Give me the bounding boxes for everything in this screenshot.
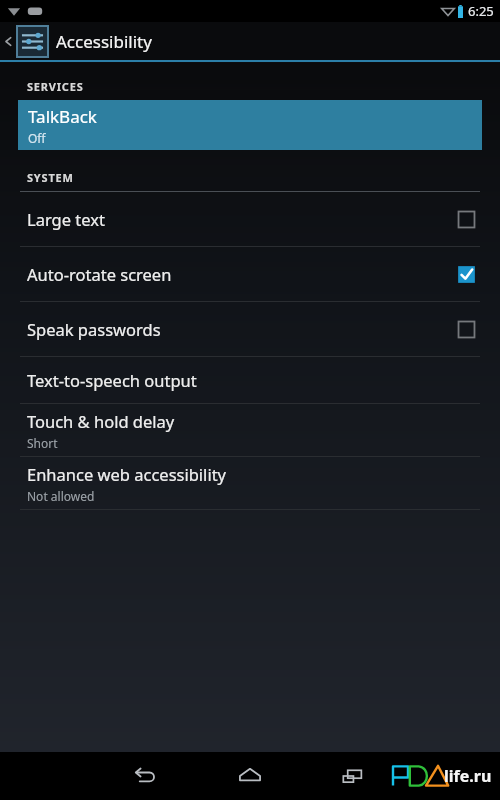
button[interactable]: Up, Accessibility [0, 22, 52, 60]
staticText: Touch & hold delay [27, 410, 175, 432]
button[interactable]: Recent apps [328, 752, 378, 800]
staticText: 6:25 [468, 2, 494, 20]
staticText: Text-to-speech output [27, 369, 197, 391]
button[interactable]: Back [120, 752, 170, 800]
staticText: Short [27, 435, 58, 451]
staticText: Accessibility [56, 30, 152, 53]
button[interactable]: Auto-rotate screen [0, 247, 500, 301]
staticText: Speak passwords [27, 318, 457, 340]
button[interactable]: TalkBack [18, 100, 482, 150]
staticText: Off [28, 130, 46, 146]
button[interactable]: Home [225, 752, 275, 800]
staticText: SYSTEM [27, 170, 74, 185]
button[interactable]: Text-to-speech output [0, 357, 500, 403]
staticText: Not allowed [27, 488, 95, 504]
staticText: SERVICES [27, 79, 84, 94]
button[interactable]: Enhance web accessibility [0, 457, 500, 509]
button[interactable]: Speak passwords [0, 302, 500, 356]
staticText: TalkBack [28, 105, 97, 128]
staticText: Enhance web accessibility [27, 463, 227, 485]
staticText: Large text [27, 208, 457, 230]
staticText: life.ru [444, 765, 492, 787]
staticText: Auto-rotate screen [27, 263, 457, 285]
button[interactable]: Touch & hold delay [0, 404, 500, 456]
button[interactable]: Large text [0, 192, 500, 246]
